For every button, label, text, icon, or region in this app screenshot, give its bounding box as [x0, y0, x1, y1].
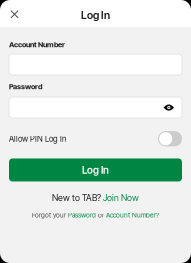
staticText: Password — [68, 211, 96, 219]
staticText: New to TAB? — [52, 192, 103, 203]
staticText: Account Number? — [106, 211, 159, 219]
staticText: Password — [9, 82, 42, 91]
staticText: Log In — [81, 8, 110, 21]
staticText: Join Now — [103, 192, 139, 203]
staticText: Log In — [82, 164, 109, 176]
staticText: Account Number — [9, 40, 65, 49]
staticText: or — [96, 211, 106, 219]
button[interactable]: Close — [3, 3, 25, 25]
button[interactable]: Account Number? — [106, 211, 159, 219]
button[interactable]: Join Now — [103, 192, 139, 203]
button[interactable]: Show password — [164, 97, 182, 118]
button[interactable]: Password — [68, 211, 96, 219]
staticText: Forgot your — [32, 211, 68, 219]
button[interactable]: Allow PIN Log In — [9, 131, 182, 146]
staticText: Allow PIN Log In — [9, 134, 66, 144]
button[interactable]: Log In — [9, 158, 182, 181]
